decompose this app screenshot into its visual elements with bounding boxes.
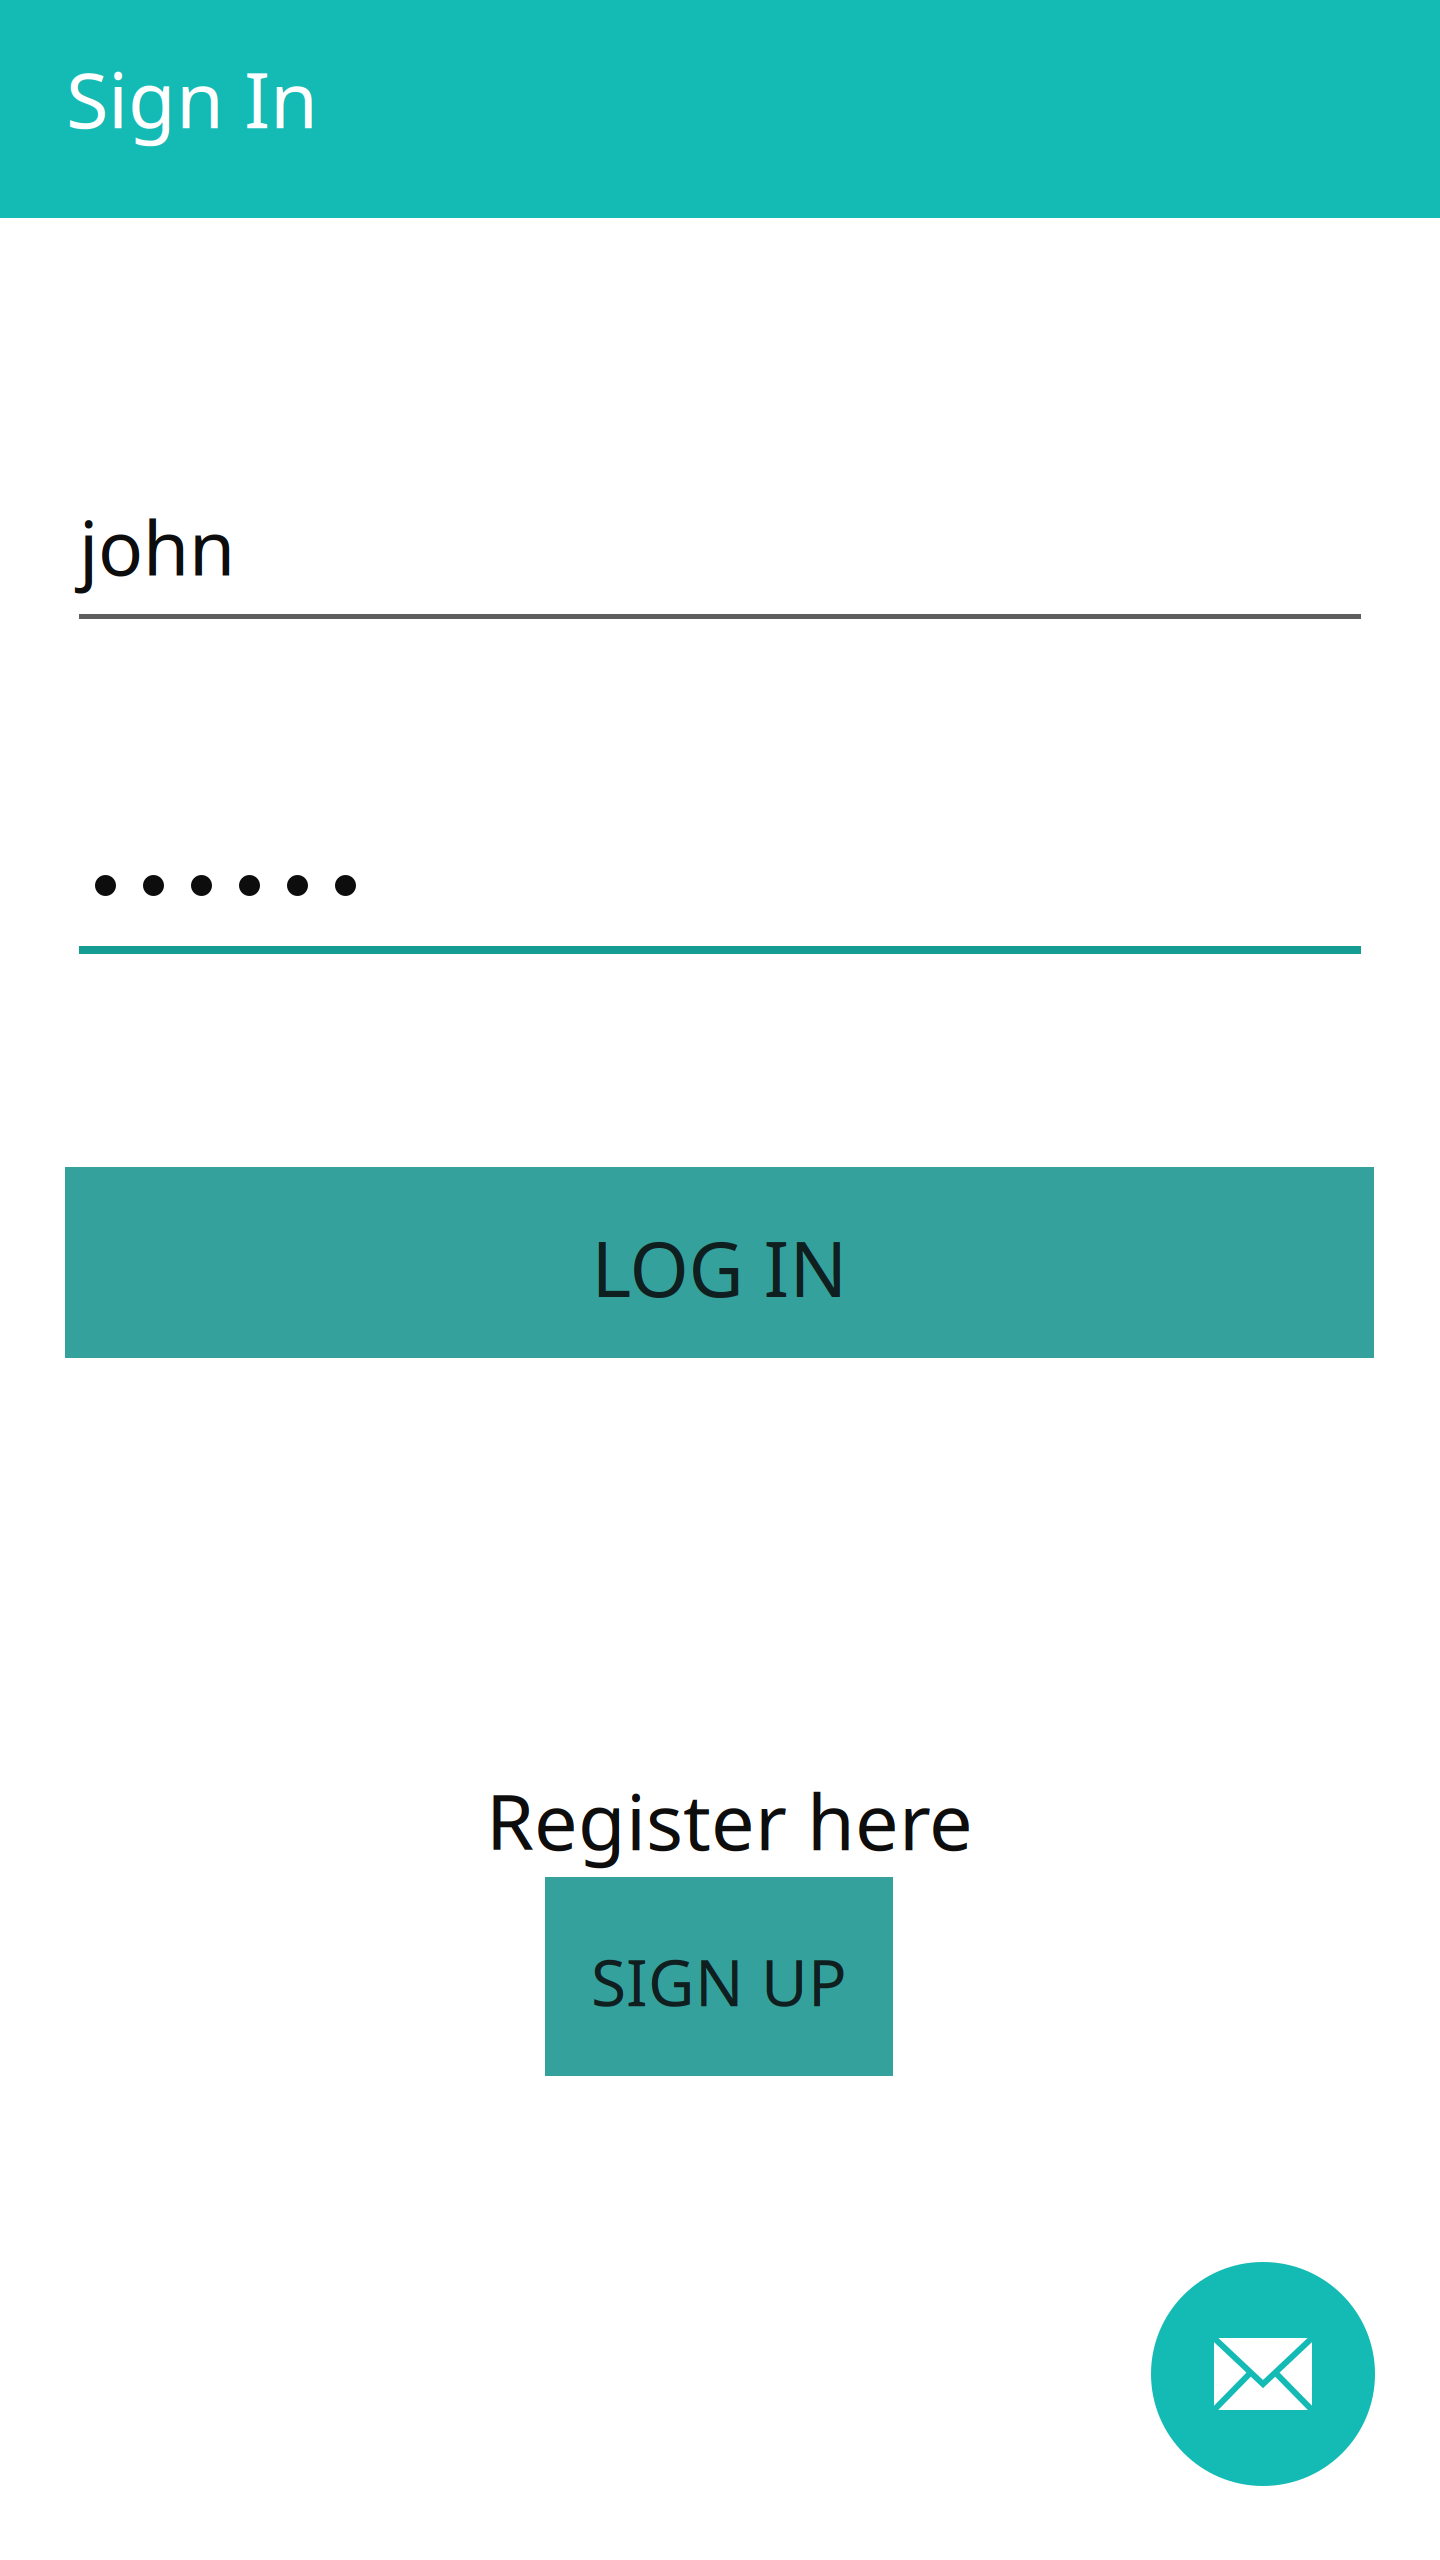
button[interactable]: Compose message <box>1151 2262 1375 2486</box>
button[interactable]: Sign In <box>66 47 318 150</box>
staticText: Sign In <box>66 47 318 150</box>
button[interactable]: SIGN UP <box>545 1877 893 2076</box>
staticText: Register here <box>486 1769 973 1872</box>
staticText: LOG IN <box>591 1217 847 1318</box>
staticText: john <box>79 497 235 596</box>
staticText: SIGN UP <box>591 1939 847 2024</box>
button[interactable]: LOG IN <box>65 1167 1374 1358</box>
